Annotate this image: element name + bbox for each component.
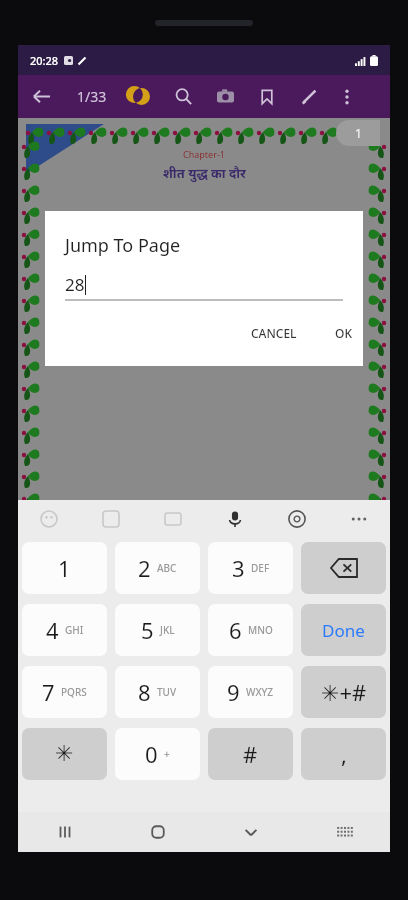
button[interactable]: Backspace [301,542,386,594]
staticText: शीत युद्ध का दौर [163,164,246,182]
button[interactable]: More options [330,75,364,118]
button[interactable]: 4 [22,604,107,656]
button[interactable]: 2 [115,542,200,594]
button[interactable]: Recents [18,812,111,852]
button[interactable]: Bookmark [246,75,288,118]
button[interactable]: 1 [336,120,380,146]
staticText: 9 [227,677,240,707]
staticText: ✳ [55,741,74,767]
staticText: , [341,739,347,769]
button[interactable]: Search [162,75,204,118]
button[interactable]: Voice input [204,500,266,537]
staticText: ✳+# [321,677,367,707]
staticText: GHI [65,623,84,637]
staticText: DEF [251,561,270,575]
button[interactable]: Back [18,75,64,118]
staticText: CANCEL [251,325,297,341]
staticText: 3 [232,553,245,583]
button[interactable]: Camera [204,75,246,118]
staticText: Chapter-1 [183,148,225,160]
staticText: 8 [138,677,151,707]
button[interactable]: Home [111,812,204,852]
staticText: Done [322,619,365,642]
button[interactable]: Edit [288,75,330,118]
button[interactable]: 9 [208,666,293,718]
staticText: WXYZ [246,685,274,699]
button[interactable]: 1 [22,542,107,594]
staticText: 28 [65,273,85,296]
staticText: 5 [141,615,154,645]
button[interactable]: OK [325,315,362,351]
staticText: # [243,739,258,769]
staticText: 20:28 [30,53,59,68]
button[interactable]: Switch keyboard [297,812,390,852]
button[interactable]: 0 [115,728,200,780]
button[interactable]: 6 [208,604,293,656]
staticText: 1 [58,553,71,583]
button[interactable]: , [301,728,386,780]
staticText: 1 [355,125,362,141]
button[interactable]: 3 [208,542,293,594]
button[interactable]: Stickers [80,500,142,537]
button[interactable]: 8 [115,666,200,718]
button[interactable]: 1/33 [64,75,120,118]
staticText: 1/33 [77,87,107,106]
staticText: 7 [42,677,55,707]
staticText: TUV [157,685,177,699]
button[interactable]: More [328,500,390,537]
button[interactable]: CANCEL [241,315,307,351]
button[interactable]: Hide keyboard [204,812,297,852]
button[interactable]: GIF [142,500,204,537]
staticText: Jump To Page [65,233,181,258]
staticText: PQRS [61,685,87,699]
staticText: + [164,747,170,761]
button[interactable]: ✳+# [301,666,386,718]
staticText: JKL [160,623,175,637]
button[interactable]: 5 [115,604,200,656]
staticText: 2 [138,553,151,583]
staticText: 6 [229,615,242,645]
button[interactable]: 7 [22,666,107,718]
button[interactable]: Done [301,604,386,656]
button[interactable]: Night mode [120,75,162,118]
staticText: OK [335,325,352,341]
button[interactable]: # [208,728,293,780]
button[interactable]: Emoji [18,500,80,537]
staticText: 4 [46,615,59,645]
staticText: MNO [248,623,273,637]
button[interactable]: Jump To Page [45,211,363,366]
button[interactable]: ✳ [22,728,107,780]
other: Backspace [331,559,357,577]
staticText: 0 [145,739,158,769]
button[interactable]: Settings [266,500,328,537]
staticText: ABC [157,561,177,575]
